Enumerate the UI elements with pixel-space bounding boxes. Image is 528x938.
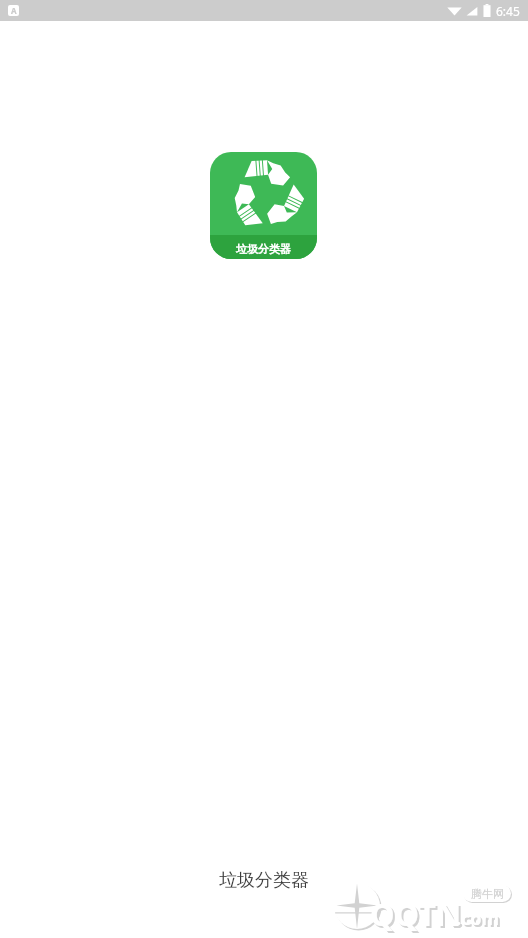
button[interactable]: 垃圾分类器	[219, 869, 309, 892]
staticText: QQTN	[372, 895, 464, 937]
other: Battery	[483, 4, 491, 17]
staticText: .com	[458, 908, 502, 933]
staticText: QQTN	[370, 893, 462, 935]
staticText: .com	[456, 906, 500, 931]
button[interactable]: 垃圾分类器 app icon	[210, 152, 317, 259]
staticText: 腾牛网	[471, 887, 504, 901]
staticText: 垃圾分类器	[219, 869, 309, 892]
other: App notification	[8, 5, 19, 16]
other: Cellular signal	[465, 5, 478, 16]
staticText: 垃圾分类器	[236, 242, 291, 256]
staticText: 6:45	[496, 3, 520, 19]
staticText: A	[11, 5, 17, 16]
other: Wi-Fi	[447, 5, 462, 16]
